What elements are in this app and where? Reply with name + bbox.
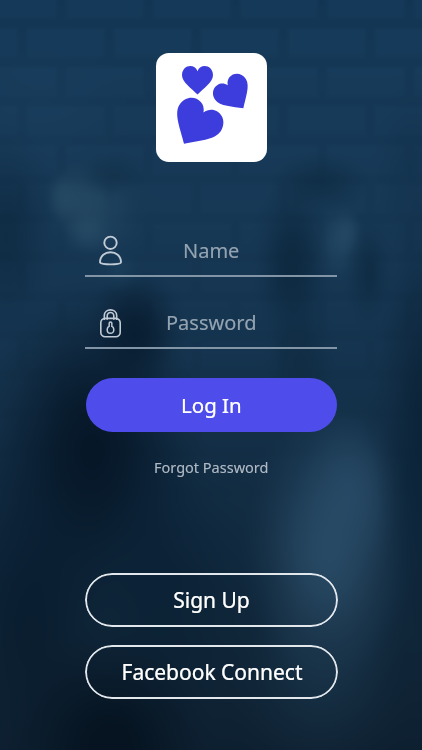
button[interactable]: Log In: [86, 378, 337, 432]
other: Name: [99, 235, 122, 265]
staticText: Facebook Connect: [121, 658, 303, 687]
button[interactable]: Forgot Password: [0, 455, 422, 479]
other: Password: [99, 308, 122, 338]
button[interactable]: Sign Up: [85, 573, 338, 627]
staticText: Forgot Password: [154, 457, 269, 477]
staticText: Name: [183, 237, 240, 264]
staticText: Log In: [181, 391, 242, 419]
staticText: Password: [166, 309, 257, 336]
button[interactable]: Facebook Connect: [85, 645, 338, 699]
staticText: Sign Up: [173, 586, 250, 615]
